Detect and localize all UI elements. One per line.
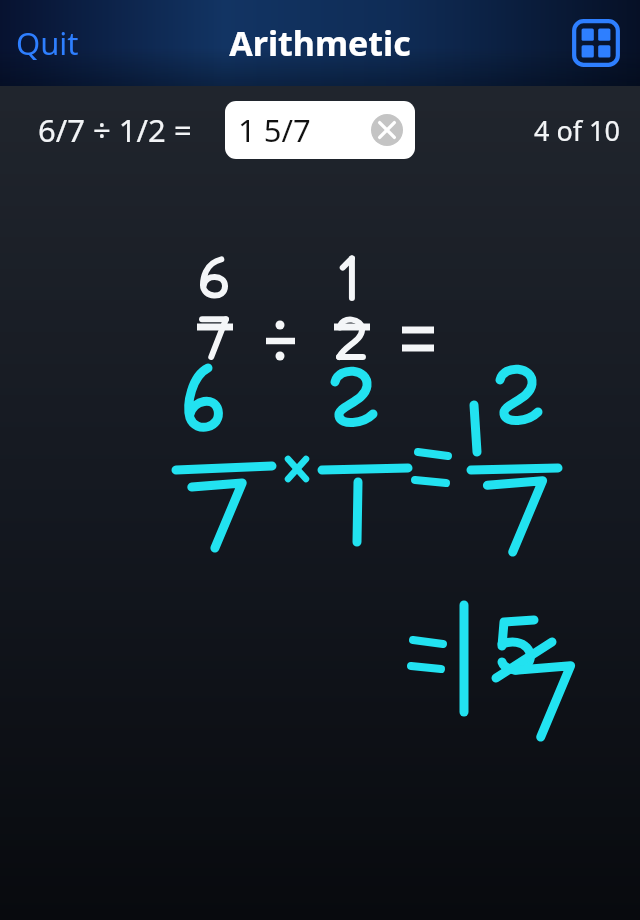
button[interactable]: Quit bbox=[8, 16, 87, 70]
button[interactable]: Clear bbox=[371, 114, 403, 146]
button[interactable]: 1 5/7 bbox=[225, 101, 415, 159]
staticText: 6/7 ÷ 1/2 = bbox=[38, 109, 192, 151]
staticText: 4 of 10 bbox=[534, 112, 620, 149]
staticText: Arithmetic bbox=[229, 20, 411, 66]
staticText: Quit bbox=[16, 22, 79, 64]
button[interactable]: Keypad bbox=[570, 17, 622, 69]
staticText: 1 5/7 bbox=[238, 109, 311, 151]
